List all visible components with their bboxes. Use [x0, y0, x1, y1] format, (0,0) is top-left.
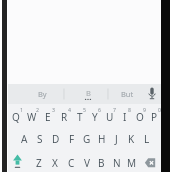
staticText: B: [98, 156, 105, 170]
staticText: F: [69, 132, 75, 146]
staticText: I: [123, 110, 127, 124]
staticText: But: [121, 89, 134, 99]
button[interactable]: V: [79, 149, 94, 172]
button[interactable]: M: [124, 149, 139, 172]
staticText: 0: [158, 106, 161, 113]
button[interactable]: H: [94, 126, 109, 149]
button[interactable]: P: [147, 104, 162, 126]
button[interactable]: A: [16, 126, 32, 149]
button[interactable]: U: [102, 104, 117, 126]
staticText: T: [77, 110, 83, 124]
staticText: W: [27, 110, 37, 124]
button[interactable]: D: [48, 126, 64, 149]
staticText: M: [127, 156, 137, 170]
staticText: X: [52, 156, 58, 170]
staticText: B: [86, 88, 91, 98]
staticText: D: [52, 132, 60, 146]
staticText: Z: [36, 156, 42, 170]
button[interactable]: I: [117, 104, 132, 126]
button[interactable]: S: [32, 126, 48, 149]
button[interactable]: L: [139, 126, 154, 149]
button[interactable]: Z: [31, 149, 47, 172]
button[interactable]: By: [28, 87, 56, 101]
button[interactable]: [8, 149, 31, 172]
staticText: 1: [20, 106, 23, 113]
button[interactable]: W: [24, 104, 40, 126]
button[interactable]: B: [74, 86, 102, 100]
staticText: By: [38, 89, 47, 99]
button[interactable]: J: [109, 126, 124, 149]
staticText: H: [98, 132, 106, 146]
staticText: 5: [83, 106, 86, 113]
staticText: J: [115, 132, 118, 146]
staticText: S: [37, 132, 43, 146]
staticText: R: [61, 110, 68, 124]
button[interactable]: But: [113, 87, 141, 101]
staticText: U: [106, 110, 114, 124]
staticText: N: [113, 156, 121, 170]
staticText: 4: [68, 106, 71, 113]
button[interactable]: Q: [8, 104, 24, 126]
button[interactable]: F: [64, 126, 79, 149]
staticText: 2: [36, 106, 39, 113]
button[interactable]: G: [79, 126, 94, 149]
button[interactable]: C: [63, 149, 79, 172]
button[interactable]: R: [56, 104, 72, 126]
button[interactable]: N: [109, 149, 124, 172]
button[interactable]: E: [40, 104, 56, 126]
staticText: Q: [12, 110, 20, 124]
button[interactable]: K: [124, 126, 139, 149]
staticText: 8: [128, 106, 131, 113]
staticText: L: [144, 132, 150, 146]
staticText: E: [45, 110, 51, 124]
button[interactable]: T: [72, 104, 87, 126]
staticText: 7: [113, 106, 116, 113]
button[interactable]: Y: [87, 104, 102, 126]
button[interactable]: X: [47, 149, 63, 172]
staticText: O: [136, 110, 144, 124]
staticText: G: [83, 132, 91, 146]
button[interactable]: [139, 149, 162, 172]
staticText: K: [128, 132, 135, 146]
staticText: 9: [143, 106, 146, 113]
staticText: 3: [52, 106, 55, 113]
button[interactable]: O: [132, 104, 147, 126]
staticText: A: [21, 132, 28, 146]
staticText: P: [151, 110, 158, 124]
button[interactable]: B: [94, 149, 109, 172]
staticText: V: [84, 156, 90, 170]
staticText: 6: [98, 106, 101, 113]
staticText: C: [68, 156, 75, 170]
staticText: Y: [92, 110, 98, 124]
